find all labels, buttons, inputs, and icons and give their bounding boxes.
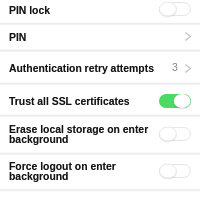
button[interactable]: PIN lock — [0, 0, 200, 23]
staticText: Force logout on enter background — [9, 161, 154, 183]
staticText: Authentication retry attempts — [9, 63, 154, 75]
button[interactable]: Erase local storage on enter background — [0, 115, 200, 153]
staticText: Authentication retry attempts — [9, 63, 154, 75]
button[interactable]: Authentication retry attempts — [0, 50, 200, 83]
staticText: Erase local storage on enter background — [9, 124, 154, 146]
button[interactable]: Switch off — [159, 164, 191, 178]
staticText: PIN — [9, 32, 27, 44]
staticText: Force logout on enter background — [9, 161, 154, 183]
button[interactable]: Force logout on enter background — [0, 153, 200, 190]
button[interactable]: Trust all SSL certificates — [0, 83, 200, 115]
staticText: PIN lock — [9, 5, 50, 17]
staticText: PIN — [9, 32, 27, 44]
staticText: Erase local storage on enter background — [9, 124, 154, 146]
button[interactable]: Switch on — [159, 94, 191, 108]
staticText: Trust all SSL certificates — [9, 96, 130, 108]
button[interactable]: Switch off — [159, 2, 191, 16]
staticText: Trust all SSL certificates — [9, 96, 130, 108]
button[interactable]: Switch off — [159, 127, 191, 141]
staticText: 3 — [172, 62, 178, 74]
button[interactable]: PIN — [0, 23, 200, 50]
staticText: PIN lock — [9, 5, 50, 17]
